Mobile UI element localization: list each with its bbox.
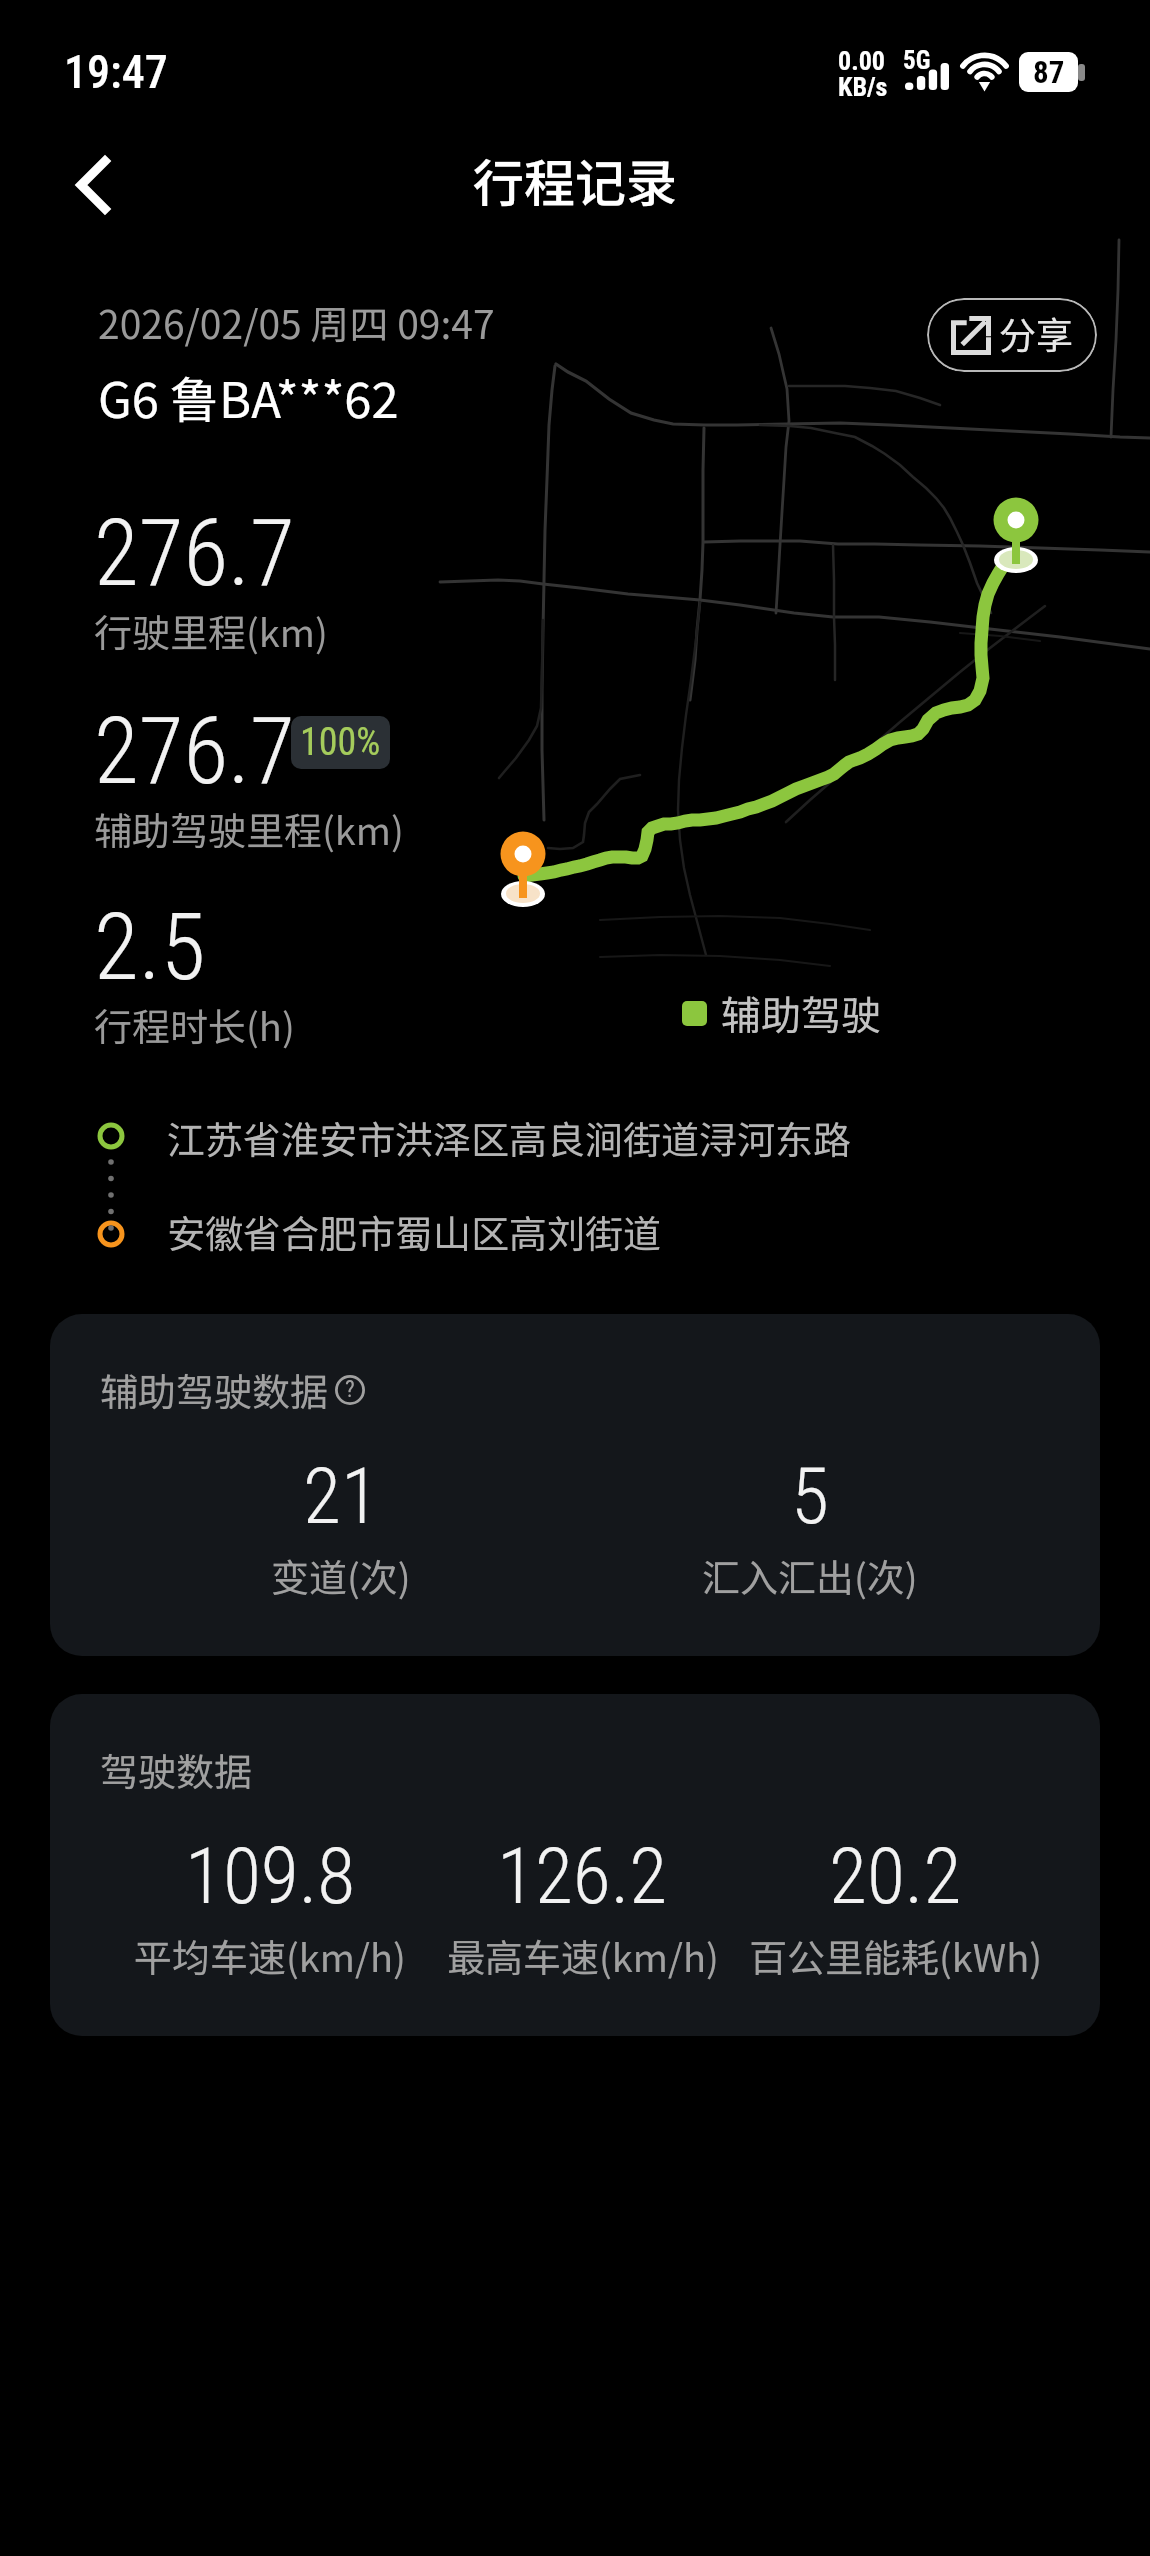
staticText: 126.2 xyxy=(497,1831,668,1922)
staticText: 109.8 xyxy=(185,1831,356,1922)
staticText: 百公里能耗(kWh) xyxy=(749,1928,1043,1983)
staticText: 87 xyxy=(1033,54,1065,90)
staticText: 变道(次) xyxy=(271,1548,411,1603)
staticText: 276.7 xyxy=(94,698,295,806)
staticText: 平均车速(km/h) xyxy=(134,1928,406,1983)
button[interactable]: 辅助驾驶数据 xyxy=(50,1314,1100,1656)
staticText: 汇入汇出(次) xyxy=(702,1548,918,1603)
staticText: 行驶里程(km) xyxy=(94,603,328,658)
staticText: 江苏省淮安市洪泽区高良涧街道浔河东路 xyxy=(167,1110,852,1165)
staticText: 驾驶数据 xyxy=(100,1742,253,1797)
staticText: 辅助驾驶里程(km) xyxy=(94,801,404,856)
staticText: 100% xyxy=(300,720,381,765)
staticText: 276.7 xyxy=(94,500,295,608)
staticText: 分享 xyxy=(999,306,1073,360)
staticText: 21 xyxy=(303,1451,379,1542)
staticText: 行程记录 xyxy=(473,143,678,217)
staticText: 辅助驾驶数据 xyxy=(100,1362,329,1417)
button[interactable]: Back xyxy=(48,140,138,230)
staticText: 5 xyxy=(791,1451,829,1542)
staticText: G6 鲁BA***62 xyxy=(98,361,399,432)
staticText: 最高车速(km/h) xyxy=(447,1928,719,1983)
staticText: 0.00 xyxy=(838,46,885,76)
staticText: 2026/02/05 周四 09:47 xyxy=(98,294,495,350)
staticText: 5G xyxy=(903,46,931,75)
staticText: 安徽省合肥市蜀山区高刘街道 xyxy=(167,1204,662,1259)
staticText: 2.5 xyxy=(94,894,206,1002)
staticText: 行程时长(h) xyxy=(94,997,295,1052)
staticText: 辅助驾驶 xyxy=(721,984,881,1042)
staticText: KB/s xyxy=(838,72,888,102)
button[interactable]: 驾驶数据 xyxy=(50,1694,1100,2036)
staticText: 20.2 xyxy=(829,1831,962,1922)
staticText: ? xyxy=(345,1376,355,1403)
staticText: 19:47 xyxy=(64,45,168,99)
button[interactable]: 分享 xyxy=(927,298,1097,372)
